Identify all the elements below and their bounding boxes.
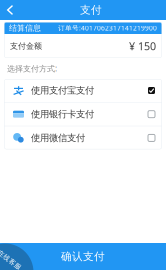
staticText: 使用支付宝支付 [31, 85, 94, 96]
staticText: 使用银行卡支付 [31, 108, 94, 120]
staticText: 支付金额 [10, 41, 42, 51]
button[interactable]: 在线客服 [0, 243, 33, 270]
staticText: 订单号:4017062317141219900 [58, 24, 157, 32]
staticText: ¥ 150 [129, 39, 156, 53]
staticText: 支付 [80, 3, 102, 16]
staticText: 选择支付方式: [7, 63, 57, 74]
staticText: 在线客服 [0, 256, 23, 264]
button[interactable]: 使用银行卡支付 [4, 103, 162, 126]
button[interactable]: 使用支付宝支付 [4, 79, 162, 102]
button[interactable]: 确认支付 [0, 243, 166, 270]
staticText: 使用微信支付 [31, 132, 85, 144]
button[interactable]: 使用微信支付 [4, 126, 162, 149]
staticText: 结算信息 [9, 23, 41, 33]
button[interactable]: Back [0, 0, 20, 20]
staticText: 确认支付 [61, 250, 105, 263]
